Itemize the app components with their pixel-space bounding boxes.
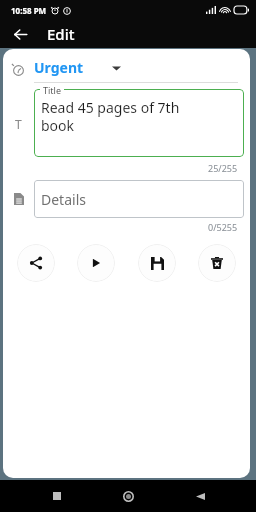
staticText: Edit [47, 24, 75, 44]
button[interactable]: Urgent [34, 58, 238, 83]
button[interactable]: Details [34, 180, 244, 218]
button[interactable]: Delete [198, 244, 236, 282]
button[interactable]: Read 45 pages of 7th book [34, 89, 244, 157]
staticText: 0/5255 [208, 221, 238, 233]
button[interactable]: Share [17, 244, 55, 282]
button[interactable]: Recent apps [42, 481, 72, 511]
staticText: 10:58 PM [11, 5, 47, 16]
button[interactable]: Save [138, 244, 176, 282]
staticText: Title [43, 84, 61, 96]
button[interactable]: Back [8, 22, 32, 46]
staticText: T [15, 116, 22, 132]
button[interactable]: Start [77, 244, 115, 282]
staticText: Details [41, 190, 86, 209]
staticText: 25/255 [208, 162, 238, 174]
button[interactable]: Home [113, 481, 143, 511]
button[interactable]: Back [185, 481, 215, 511]
staticText: Read 45 pages of 7th book [41, 98, 180, 135]
staticText: Urgent [34, 58, 84, 77]
